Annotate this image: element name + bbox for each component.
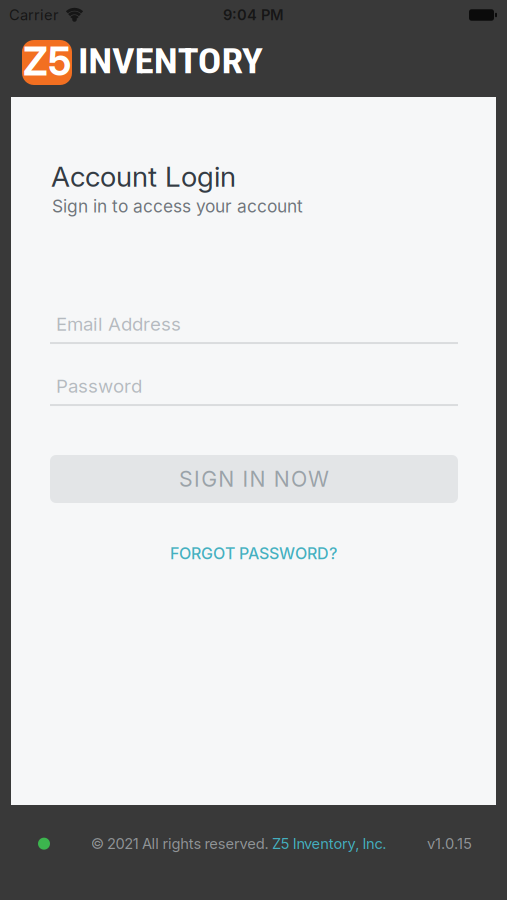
staticText: Sign in to access your account — [52, 196, 303, 216]
staticText: 9:04 PM — [223, 6, 284, 24]
staticText: Password — [56, 375, 142, 397]
staticText: Z5 Inventory, Inc. — [272, 835, 386, 852]
staticText: Account Login — [51, 160, 236, 193]
staticText: INVENTORY — [78, 41, 242, 82]
staticText: Carrier — [9, 6, 59, 24]
staticText: FORGOT PASSWORD? — [170, 544, 337, 563]
button[interactable]: Email Address — [50, 313, 458, 344]
staticText: © 2021 All rights reserved. — [91, 835, 272, 852]
staticText: Z5 — [23, 39, 71, 84]
button[interactable]: FORGOT PASSWORD? — [11, 544, 496, 563]
staticText: SIGN IN NOW — [179, 466, 329, 492]
button[interactable]: Z5 Inventory, Inc. — [272, 835, 386, 852]
staticText: v1.0.15 — [427, 835, 472, 852]
button[interactable]: SIGN IN NOW — [50, 455, 458, 503]
staticText: Email Address — [56, 313, 181, 335]
button[interactable]: Password — [50, 375, 458, 406]
